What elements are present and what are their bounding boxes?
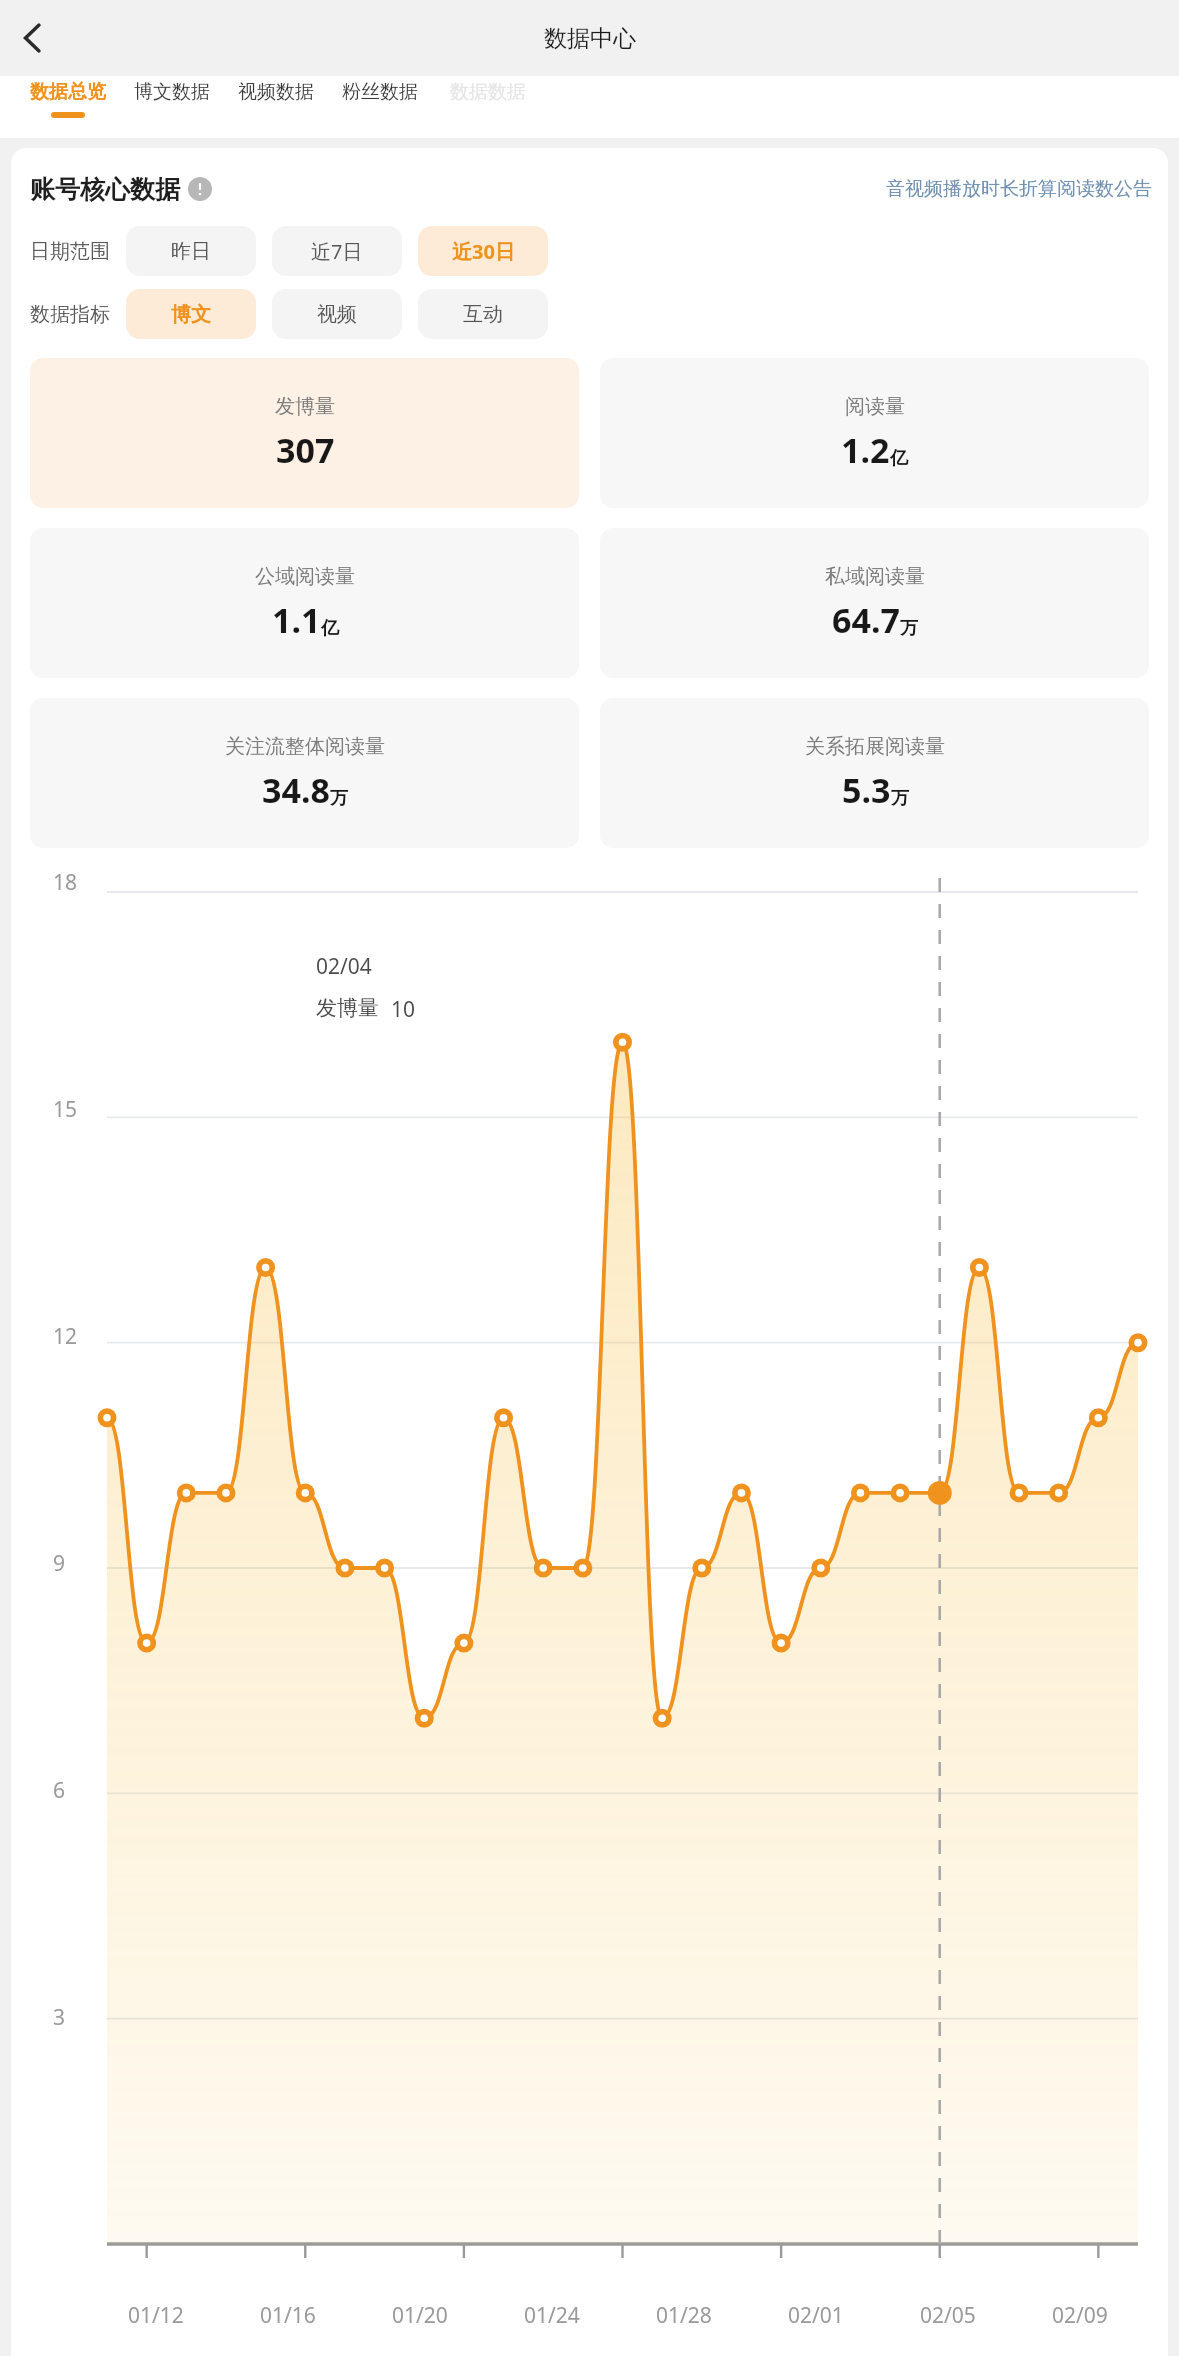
staticText: 账号核心数据 (30, 174, 180, 205)
staticText: 3 (53, 2003, 66, 2032)
staticText: 5.3 (842, 767, 891, 813)
button[interactable]: 数据总览 (16, 76, 120, 138)
staticText: 64.7 (832, 597, 900, 643)
staticText: 日期范围 (30, 239, 110, 264)
staticText: 15 (53, 1095, 78, 1124)
staticText: 近7日 (311, 238, 363, 265)
staticText: 02/09 (1052, 2301, 1108, 2330)
staticText: 01/12 (128, 2301, 184, 2330)
staticText: 亿 (321, 617, 339, 640)
staticText: 02/01 (788, 2301, 844, 2330)
button[interactable]: 关注流整体阅读量 (30, 698, 579, 848)
button[interactable]: Back (4, 9, 62, 67)
staticText: 公域阅读量 (255, 564, 355, 589)
button[interactable]: 说明 (188, 177, 212, 201)
staticText: 互动 (463, 302, 503, 327)
staticText: 18 (53, 868, 78, 897)
button[interactable]: 视频 (272, 289, 402, 339)
staticText: 粉丝数据 (342, 80, 418, 104)
staticText: 关注流整体阅读量 (225, 734, 385, 759)
button[interactable]: 阅读量 (600, 358, 1149, 508)
staticText: 01/20 (392, 2301, 448, 2330)
staticText: 关系拓展阅读量 (805, 734, 945, 759)
button[interactable]: 近30日 (418, 226, 548, 276)
staticText: 视频 (317, 302, 357, 327)
staticText: 9 (53, 1549, 66, 1578)
staticText: 数据数据 (450, 80, 526, 104)
button[interactable]: 粉丝数据 (328, 76, 432, 138)
staticText: 307 (276, 427, 335, 473)
staticText: 数据总览 (30, 80, 106, 104)
button[interactable]: 博文 (126, 289, 256, 339)
staticText: 万 (891, 787, 909, 810)
button[interactable]: 公域阅读量 (30, 528, 579, 678)
staticText: 01/24 (524, 2301, 580, 2330)
button[interactable]: 近7日 (272, 226, 402, 276)
staticText: 02/04 (316, 952, 372, 981)
button[interactable]: 发博量 (30, 358, 579, 508)
staticText: 01/16 (260, 2301, 316, 2330)
staticText: 近30日 (452, 238, 515, 265)
button[interactable]: 昨日 (126, 226, 256, 276)
staticText: 博文 (171, 302, 211, 327)
button[interactable]: 音视频播放时长折算阅读数公告 (886, 173, 1152, 205)
button[interactable]: 私域阅读量 (600, 528, 1149, 678)
staticText: 10 (391, 995, 416, 1024)
staticText: 6 (53, 1776, 66, 1805)
staticText: 01/28 (656, 2301, 712, 2330)
staticText: 阅读量 (845, 394, 905, 419)
staticText: 发博量 (275, 394, 335, 419)
staticText: 02/05 (920, 2301, 976, 2330)
staticText: 昨日 (171, 239, 211, 264)
staticText: 1.2 (841, 427, 890, 473)
staticText: 发博量 (316, 995, 379, 1021)
button[interactable]: 关系拓展阅读量 (600, 698, 1149, 848)
staticText: 视频数据 (238, 80, 314, 104)
staticText: 1.1 (272, 597, 321, 643)
staticText: 博文数据 (134, 80, 210, 104)
staticText: 亿 (890, 447, 908, 470)
staticText: 万 (900, 617, 918, 640)
staticText: 音视频播放时长折算阅读数公告 (886, 177, 1152, 201)
button[interactable]: 互动 (418, 289, 548, 339)
button[interactable]: 博文数据 (120, 76, 224, 138)
button[interactable]: 视频数据 (224, 76, 328, 138)
staticText: 12 (53, 1322, 78, 1351)
staticText: 万 (330, 787, 348, 810)
staticText: 数据指标 (30, 302, 110, 327)
staticText: 私域阅读量 (825, 564, 925, 589)
staticText: 数据中心 (544, 24, 636, 53)
staticText: 34.8 (262, 767, 330, 813)
